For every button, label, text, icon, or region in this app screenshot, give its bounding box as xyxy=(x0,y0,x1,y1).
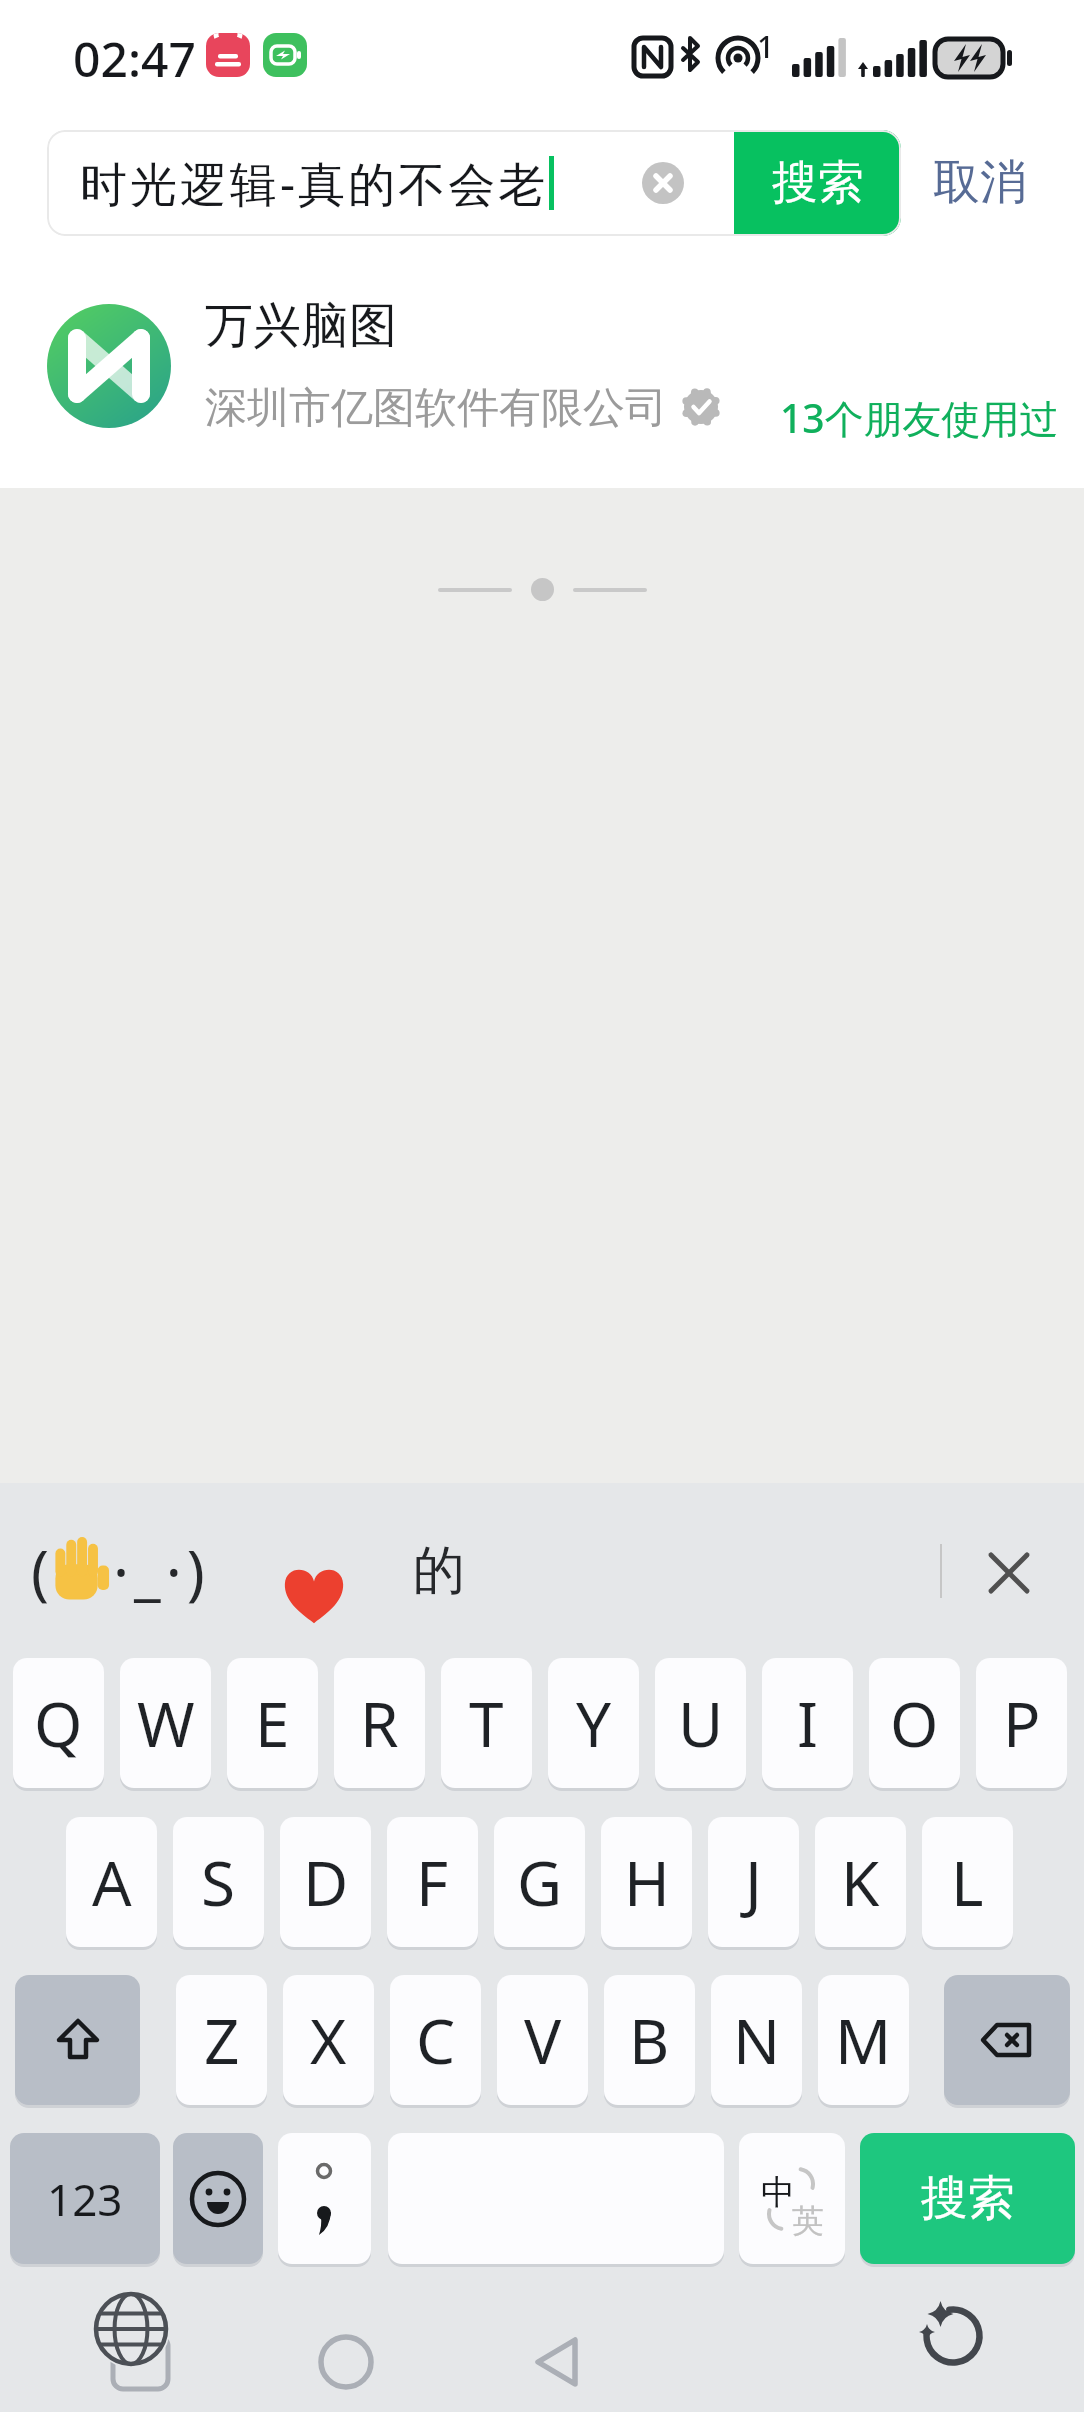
button[interactable]: J xyxy=(708,1817,799,1947)
staticText: E xyxy=(255,1681,290,1765)
staticText: 搜索 xyxy=(921,2169,1015,2228)
button[interactable]: Z xyxy=(176,1975,267,2105)
staticText: 搜索 xyxy=(772,154,864,212)
button[interactable]: H xyxy=(601,1817,692,1947)
staticText: 1 xyxy=(757,26,775,67)
staticText: V xyxy=(524,1998,562,2082)
button[interactable]: C xyxy=(390,1975,481,2105)
staticText: X xyxy=(310,1998,347,2082)
button[interactable]: Y xyxy=(548,1658,639,1788)
staticText: B xyxy=(629,1998,670,2082)
button[interactable] xyxy=(283,1563,345,1625)
button[interactable]: ( xyxy=(31,1483,210,1658)
button[interactable] xyxy=(278,2133,371,2264)
staticText: J xyxy=(745,1840,762,1924)
button[interactable] xyxy=(974,1538,1044,1608)
button[interactable]: K xyxy=(815,1817,906,1947)
button[interactable]: 搜索 xyxy=(734,130,901,236)
button[interactable]: V xyxy=(497,1975,588,2105)
staticText: P xyxy=(1003,1681,1041,1765)
button[interactable] xyxy=(318,2335,374,2391)
staticText: F xyxy=(416,1840,449,1924)
button[interactable]: G xyxy=(494,1817,585,1947)
button[interactable]: F xyxy=(387,1817,478,1947)
staticText: S xyxy=(201,1840,236,1924)
staticText: Z xyxy=(204,1998,240,2082)
button[interactable] xyxy=(944,1975,1070,2105)
staticText: 02:47 xyxy=(73,26,196,91)
staticText: ·_·) xyxy=(113,1530,210,1612)
button[interactable]: B xyxy=(604,1975,695,2105)
staticText: I xyxy=(797,1681,819,1765)
button[interactable]: U xyxy=(655,1658,746,1788)
button[interactable]: Q xyxy=(13,1658,104,1788)
button[interactable] xyxy=(49,1537,113,1605)
staticText: 中 xyxy=(761,2171,795,2214)
staticText: L xyxy=(951,1840,984,1924)
staticText: 123 xyxy=(47,2169,123,2229)
staticText: G xyxy=(517,1840,563,1924)
button[interactable]: A xyxy=(66,1817,157,1947)
staticText: W xyxy=(137,1681,195,1765)
button[interactable]: D xyxy=(280,1817,371,1947)
staticText: U xyxy=(678,1681,724,1765)
staticText: 万兴脑图 xyxy=(205,296,397,356)
button[interactable]: X xyxy=(283,1975,374,2105)
button[interactable]: P xyxy=(976,1658,1067,1788)
staticText: Q xyxy=(34,1681,83,1765)
button[interactable]: N xyxy=(711,1975,802,2105)
staticText: T xyxy=(469,1681,504,1765)
staticText: M xyxy=(835,1998,892,2082)
button[interactable]: 123 xyxy=(10,2133,160,2264)
button[interactable] xyxy=(85,2284,180,2379)
button[interactable] xyxy=(528,2333,588,2393)
button[interactable]: R xyxy=(334,1658,425,1788)
staticText: H xyxy=(624,1840,670,1924)
staticText: 取消 xyxy=(933,153,1027,212)
staticText: D xyxy=(303,1840,349,1924)
button[interactable]: T xyxy=(441,1658,532,1788)
staticText: N xyxy=(733,1998,781,2082)
staticText: O xyxy=(890,1681,939,1765)
button[interactable]: E xyxy=(227,1658,318,1788)
button[interactable]: S xyxy=(173,1817,264,1947)
staticText: Y xyxy=(576,1681,612,1765)
button[interactable] xyxy=(642,162,684,204)
staticText: C xyxy=(416,1998,456,2082)
button[interactable] xyxy=(173,2133,263,2264)
staticText: 深圳市亿图软件有限公司 xyxy=(205,382,667,435)
button[interactable]: W xyxy=(120,1658,211,1788)
button[interactable]: O xyxy=(869,1658,960,1788)
button[interactable]: 取消 xyxy=(933,153,1027,212)
staticText: 13个朋友使用过 xyxy=(780,391,1059,444)
button[interactable]: I xyxy=(762,1658,853,1788)
staticText: ( xyxy=(31,1530,49,1612)
staticText: 英 xyxy=(792,2201,824,2241)
button[interactable]: 万兴脑图 xyxy=(0,236,1084,488)
button[interactable] xyxy=(905,2290,995,2380)
button[interactable]: 的 xyxy=(404,1483,474,1658)
button[interactable]: 中 xyxy=(739,2133,845,2264)
staticText: 的 xyxy=(413,1538,465,1604)
staticText: K xyxy=(841,1840,880,1924)
button[interactable]: 搜索 xyxy=(860,2133,1075,2264)
staticText: 时光逻辑-真的不会老 xyxy=(80,151,549,215)
button[interactable]: M xyxy=(818,1975,909,2105)
button[interactable] xyxy=(15,1975,140,2105)
button[interactable]: L xyxy=(922,1817,1013,1947)
staticText: R xyxy=(360,1681,399,1765)
staticText: A xyxy=(92,1840,132,1924)
